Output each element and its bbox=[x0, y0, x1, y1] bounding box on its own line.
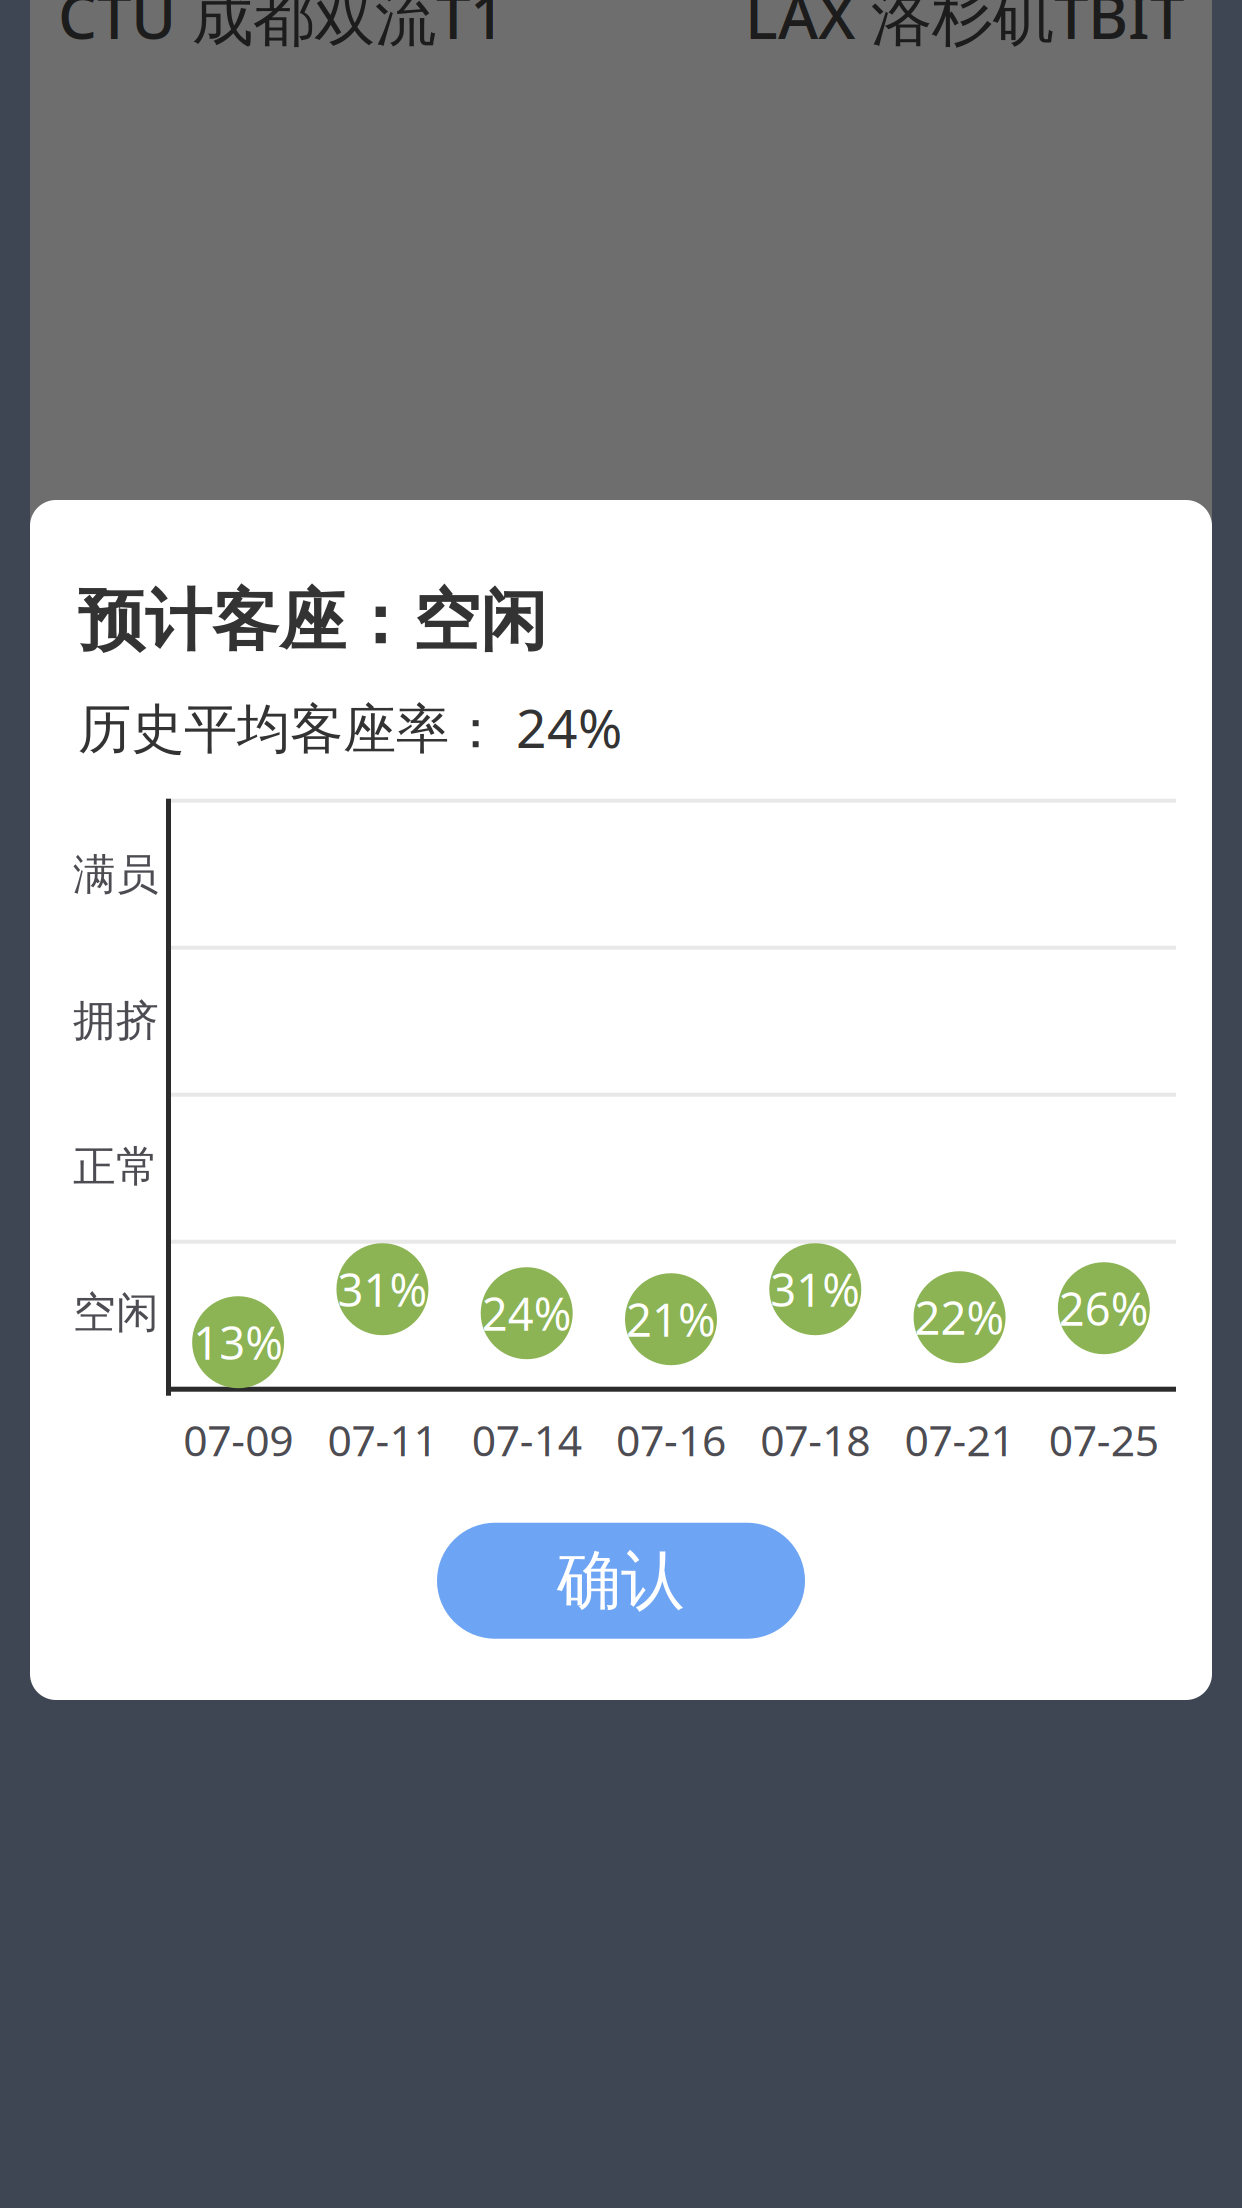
staticText: LAX 洛杉矶TBIT bbox=[745, 0, 1184, 56]
button[interactable]: 手机选座 bbox=[930, 1244, 1182, 1320]
staticText: 22% bbox=[915, 1287, 1005, 1347]
staticText: 31% bbox=[337, 1259, 427, 1319]
staticText: 07-11 bbox=[327, 1411, 437, 1468]
staticText: 26% bbox=[1059, 1278, 1149, 1338]
staticText: 座位号 bbox=[154, 1209, 307, 1271]
staticText: 机票服务 bbox=[60, 1085, 296, 1158]
staticText: 07-14 bbox=[472, 1411, 582, 1468]
staticText: 31% bbox=[770, 1259, 860, 1319]
staticText: 正常 bbox=[73, 1140, 159, 1193]
staticText: 07-21 bbox=[905, 1411, 1015, 1468]
staticText: CTU 成都双流T1 bbox=[58, 0, 505, 56]
staticText: 07-09 bbox=[183, 1411, 293, 1468]
staticText: 预计客座：空闲 bbox=[78, 580, 547, 662]
staticText: 关注航班 bbox=[493, 1453, 749, 1532]
staticText: 手机选座 bbox=[960, 1253, 1152, 1312]
staticText: 空闲 bbox=[73, 1286, 159, 1339]
staticText: 07-16 bbox=[616, 1411, 726, 1468]
staticText: 24% bbox=[482, 1283, 572, 1343]
staticText: 确认 bbox=[557, 1541, 685, 1620]
button[interactable]: 关注航班 bbox=[30, 1418, 1212, 1566]
staticText: 历史平均客座率： 24% bbox=[78, 692, 622, 763]
staticText: 预计值机时间 bbox=[586, 1207, 904, 1273]
staticText: 07-18 bbox=[760, 1411, 870, 1468]
staticText: 07月27日14:00 bbox=[536, 1287, 904, 1358]
staticText: 07-25 bbox=[1049, 1411, 1159, 1468]
staticText: -- bbox=[154, 1289, 186, 1356]
staticText: 满员 bbox=[73, 848, 159, 901]
staticText: 21% bbox=[626, 1289, 716, 1349]
staticText: 13% bbox=[193, 1312, 283, 1372]
staticText: 拥挤 bbox=[73, 994, 159, 1047]
button[interactable]: 确认 bbox=[437, 1523, 805, 1639]
